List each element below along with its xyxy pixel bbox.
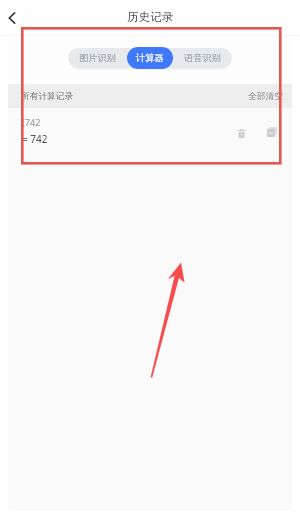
button[interactable]: Copy [262, 122, 282, 142]
staticText: 全部清空 [248, 91, 283, 102]
button[interactable]: 语音识别 [173, 47, 232, 69]
staticText: 历史记录 [127, 10, 174, 25]
button[interactable]: Back [2, 8, 22, 28]
staticText: = 742 [22, 132, 48, 146]
button[interactable]: 图片识别 [68, 47, 127, 69]
staticText: 语音识别 [184, 52, 221, 64]
staticText: 图片识别 [79, 52, 116, 64]
button[interactable]: 计算器 [127, 47, 173, 69]
button[interactable]: Delete [231, 122, 251, 142]
button[interactable]: 全部清空 [238, 86, 292, 107]
staticText: 计算器 [136, 52, 164, 64]
staticText: (742 [22, 116, 41, 129]
staticText: 所有计算记录 [21, 91, 74, 102]
button[interactable]: (742 [8, 108, 292, 156]
